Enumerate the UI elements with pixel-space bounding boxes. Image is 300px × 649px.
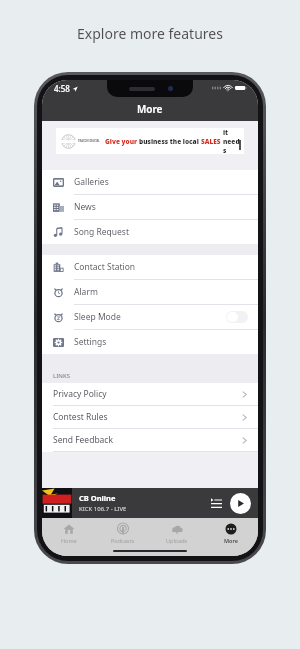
staticText: Settings — [74, 336, 107, 348]
staticText: Contact Station — [74, 261, 136, 273]
button[interactable]: Home — [42, 520, 96, 544]
staticText: Home — [61, 537, 77, 544]
button[interactable]: CB Online — [42, 488, 258, 518]
button[interactable]: Privacy Policy — [42, 383, 258, 406]
staticText: News — [74, 201, 96, 213]
staticText: Send Feedback — [53, 434, 113, 446]
button[interactable]: TRACON DIGITAL — [56, 128, 244, 154]
staticText: TRACON DIGITAL — [78, 139, 100, 143]
staticText: KICK 106.7 - LIVE — [79, 505, 127, 513]
button[interactable]: Sleep Mode — [42, 305, 258, 330]
button[interactable]: Podcasts — [96, 520, 150, 544]
button[interactable]: Send Feedback — [42, 429, 258, 452]
staticText: CB Online — [79, 493, 116, 503]
button[interactable]: Song Request — [42, 220, 258, 244]
button[interactable]: Alarm — [42, 280, 258, 305]
staticText: SALES — [201, 137, 223, 146]
staticText: it needs — [223, 128, 240, 154]
button[interactable]: Galleries — [42, 170, 258, 195]
staticText: LINKS — [53, 372, 71, 380]
button[interactable]: Play — [230, 493, 251, 514]
staticText: Give your — [105, 137, 139, 146]
button[interactable]: More — [204, 520, 258, 544]
staticText: 4:58 — [54, 83, 70, 94]
button[interactable]: Queue — [207, 494, 225, 512]
staticText: Galleries — [74, 176, 109, 188]
button[interactable]: News — [42, 195, 258, 220]
button[interactable]: Contact Station — [42, 255, 258, 280]
staticText: Podcasts — [111, 537, 135, 544]
staticText: More — [137, 102, 163, 116]
staticText: Privacy Policy — [53, 388, 107, 400]
staticText: Explore more features — [77, 24, 223, 43]
staticText: More — [224, 537, 238, 544]
staticText: Song Request — [74, 226, 129, 238]
button[interactable]: Uploads — [150, 520, 204, 544]
button[interactable]: Settings — [42, 330, 258, 354]
staticText: business the local — [139, 137, 201, 146]
button[interactable]: Contest Rules — [42, 406, 258, 429]
staticText: Uploads — [166, 537, 188, 544]
staticText: Contest Rules — [53, 411, 108, 423]
staticText: Alarm — [74, 286, 98, 298]
staticText: Sleep Mode — [74, 311, 121, 323]
